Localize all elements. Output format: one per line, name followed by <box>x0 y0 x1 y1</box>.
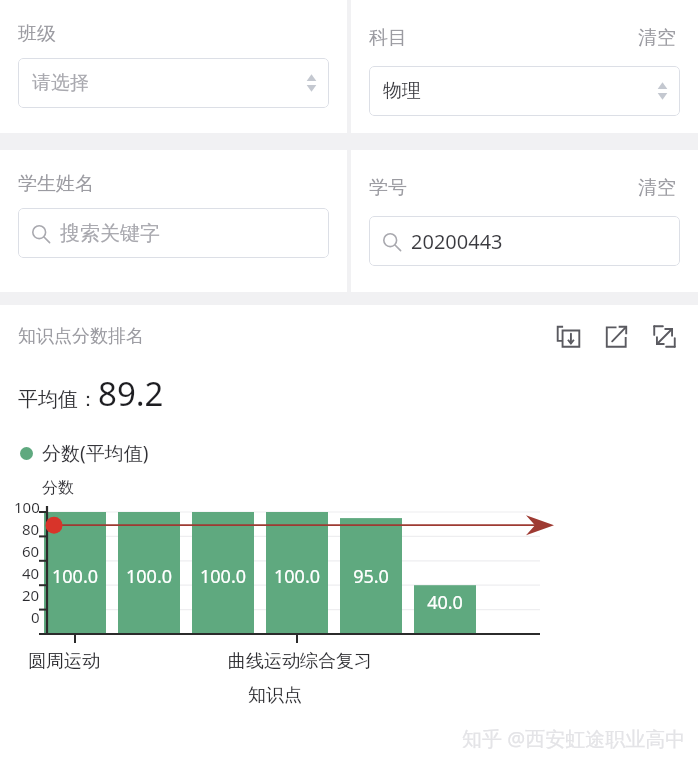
staticText: 清空 <box>638 176 676 200</box>
staticText: 20 <box>22 585 40 605</box>
button[interactable]: 物理 <box>369 66 680 116</box>
staticText: 60 <box>22 541 40 561</box>
staticText: 100 <box>14 497 40 517</box>
button[interactable]: Fullscreen <box>648 320 680 352</box>
staticText: 100.0 <box>262 564 332 589</box>
staticText: 知乎 @西安虹途职业高中 <box>462 725 686 752</box>
staticText: 100.0 <box>188 564 258 589</box>
staticText: 80 <box>22 519 40 539</box>
staticText: 科目 <box>369 26 407 50</box>
button[interactable]: 清空 <box>634 22 680 54</box>
staticText: 学号 <box>369 176 407 200</box>
button[interactable]: 清空 <box>634 172 680 204</box>
staticText: 分数 <box>42 478 74 498</box>
staticText: 20200443 <box>411 228 503 255</box>
button[interactable]: Open in new window <box>600 320 632 352</box>
staticText: 搜索关键字 <box>60 221 160 246</box>
staticText: 班级 <box>18 22 56 46</box>
button[interactable]: Download <box>552 320 584 352</box>
staticText: 知识点分数排名 <box>18 325 144 348</box>
staticText: 物理 <box>383 79 421 103</box>
staticText: 100.0 <box>114 564 184 589</box>
button[interactable]: 搜索关键字 <box>18 208 329 258</box>
staticText: 平均值： <box>18 387 98 412</box>
staticText: 清空 <box>638 26 676 50</box>
staticText: 40.0 <box>410 590 480 615</box>
staticText: 曲线运动综合复习 <box>228 650 372 673</box>
staticText: 分数(平均值) <box>42 440 149 466</box>
staticText: 圆周运动 <box>28 650 100 673</box>
staticText: 知识点 <box>248 684 302 707</box>
staticText: 40 <box>22 563 40 583</box>
staticText: 100.0 <box>40 564 110 589</box>
staticText: 95.0 <box>336 564 406 589</box>
button[interactable]: 20200443 <box>369 216 680 266</box>
staticText: 学生姓名 <box>18 172 94 196</box>
staticText: 0 <box>31 607 40 627</box>
staticText: 89.2 <box>98 371 164 416</box>
button[interactable]: 请选择 <box>18 58 329 108</box>
staticText: 请选择 <box>32 71 89 95</box>
